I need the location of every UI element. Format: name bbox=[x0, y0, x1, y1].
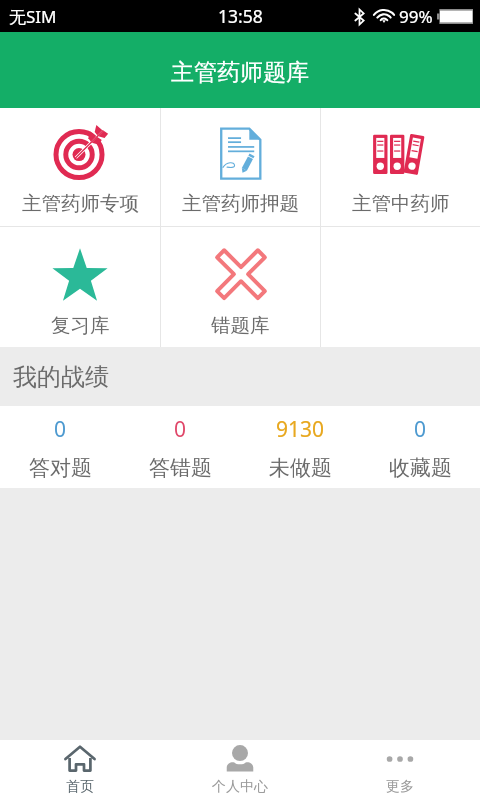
button[interactable]: 首页 bbox=[0, 740, 160, 800]
button[interactable]: 主管药师专项 bbox=[0, 108, 160, 226]
button[interactable]: 更多 bbox=[320, 740, 480, 800]
staticText: 0 bbox=[414, 415, 427, 444]
staticText: 主管药师押题 bbox=[182, 191, 299, 216]
staticText: 收藏题 bbox=[389, 455, 452, 481]
staticText: 0 bbox=[54, 415, 67, 444]
staticText: 无SIM bbox=[9, 5, 57, 28]
staticText: 主管药师题库 bbox=[171, 58, 309, 87]
button[interactable]: 个人中心 bbox=[160, 740, 320, 800]
button[interactable]: 复习库 bbox=[0, 227, 160, 347]
button[interactable]: 主管中药师 bbox=[321, 108, 480, 226]
staticText: 9130 bbox=[276, 415, 325, 444]
button[interactable]: 主管药师押题 bbox=[161, 108, 320, 226]
staticText: 答错题 bbox=[149, 455, 212, 481]
staticText: 首页 bbox=[66, 778, 94, 796]
staticText: 未做题 bbox=[269, 455, 332, 481]
button[interactable]: 0 bbox=[0, 406, 120, 488]
button[interactable]: 9130 bbox=[240, 406, 360, 488]
staticText: 99% bbox=[399, 5, 433, 28]
staticText: 个人中心 bbox=[212, 778, 268, 796]
staticText: 复习库 bbox=[51, 313, 110, 338]
button[interactable]: 错题库 bbox=[161, 227, 320, 347]
staticText: 主管药师专项 bbox=[22, 191, 139, 216]
staticText: 主管中药师 bbox=[352, 191, 450, 216]
button[interactable]: 0 bbox=[360, 406, 480, 488]
button[interactable]: 0 bbox=[120, 406, 240, 488]
staticText: 0 bbox=[174, 415, 187, 444]
staticText: 更多 bbox=[386, 778, 414, 796]
staticText: 我的战绩 bbox=[13, 362, 109, 392]
staticText: 错题库 bbox=[211, 313, 270, 338]
staticText: 13:58 bbox=[218, 4, 263, 28]
staticText: 答对题 bbox=[29, 455, 92, 481]
